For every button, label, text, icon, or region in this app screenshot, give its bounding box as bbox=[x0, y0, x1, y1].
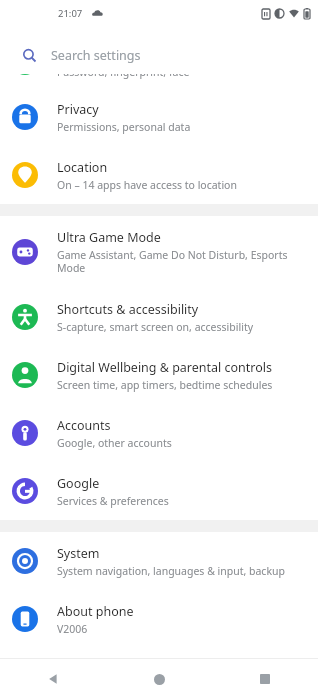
button[interactable]: Digital Wellbeing & parental controls bbox=[0, 346, 318, 404]
button[interactable]: Google bbox=[0, 462, 318, 520]
staticText: Google bbox=[57, 475, 100, 492]
button[interactable]: System bbox=[0, 532, 318, 590]
staticText: Ultra Game Mode bbox=[57, 229, 161, 246]
staticText: Services & preferences bbox=[57, 494, 169, 508]
button[interactable]: Accounts bbox=[0, 404, 318, 462]
staticText: Password, fingerprint, face bbox=[57, 65, 190, 79]
staticText: Privacy bbox=[57, 101, 99, 118]
button[interactable]: Home bbox=[106, 658, 212, 700]
button[interactable]: Security bbox=[0, 36, 318, 88]
staticText: V2006 bbox=[57, 622, 88, 636]
staticText: Game Assistant, Game Do Not Disturb, Esp… bbox=[57, 248, 288, 275]
button[interactable]: Recent apps bbox=[212, 658, 318, 700]
button[interactable]: About phone bbox=[0, 590, 318, 648]
button[interactable]: Privacy bbox=[0, 88, 318, 146]
button[interactable]: Shortcuts & accessibility bbox=[0, 288, 318, 346]
button[interactable]: Ultra Game Mode bbox=[0, 216, 318, 288]
staticText: Security bbox=[57, 46, 104, 63]
staticText: Permissions, personal data bbox=[57, 120, 191, 134]
staticText: Screen time, app timers, bedtime schedul… bbox=[57, 378, 273, 392]
button[interactable]: Back bbox=[0, 658, 106, 700]
staticText: Location bbox=[57, 159, 108, 176]
button[interactable]: Search settings bbox=[8, 36, 310, 74]
staticText: On – 14 apps have access to location bbox=[57, 178, 237, 192]
staticText: About phone bbox=[57, 603, 134, 620]
staticText: Shortcuts & accessibility bbox=[57, 301, 199, 318]
staticText: Google, other accounts bbox=[57, 436, 172, 450]
staticText: System navigation, languages & input, ba… bbox=[57, 564, 285, 578]
staticText: S-capture, smart screen on, accessibilit… bbox=[57, 320, 254, 334]
staticText: Accounts bbox=[57, 417, 111, 434]
staticText: System bbox=[57, 545, 100, 562]
staticText: Search settings bbox=[51, 47, 141, 64]
staticText: Digital Wellbeing & parental controls bbox=[57, 359, 273, 376]
button[interactable]: Location bbox=[0, 146, 318, 204]
staticText: 21:07 bbox=[58, 7, 83, 20]
